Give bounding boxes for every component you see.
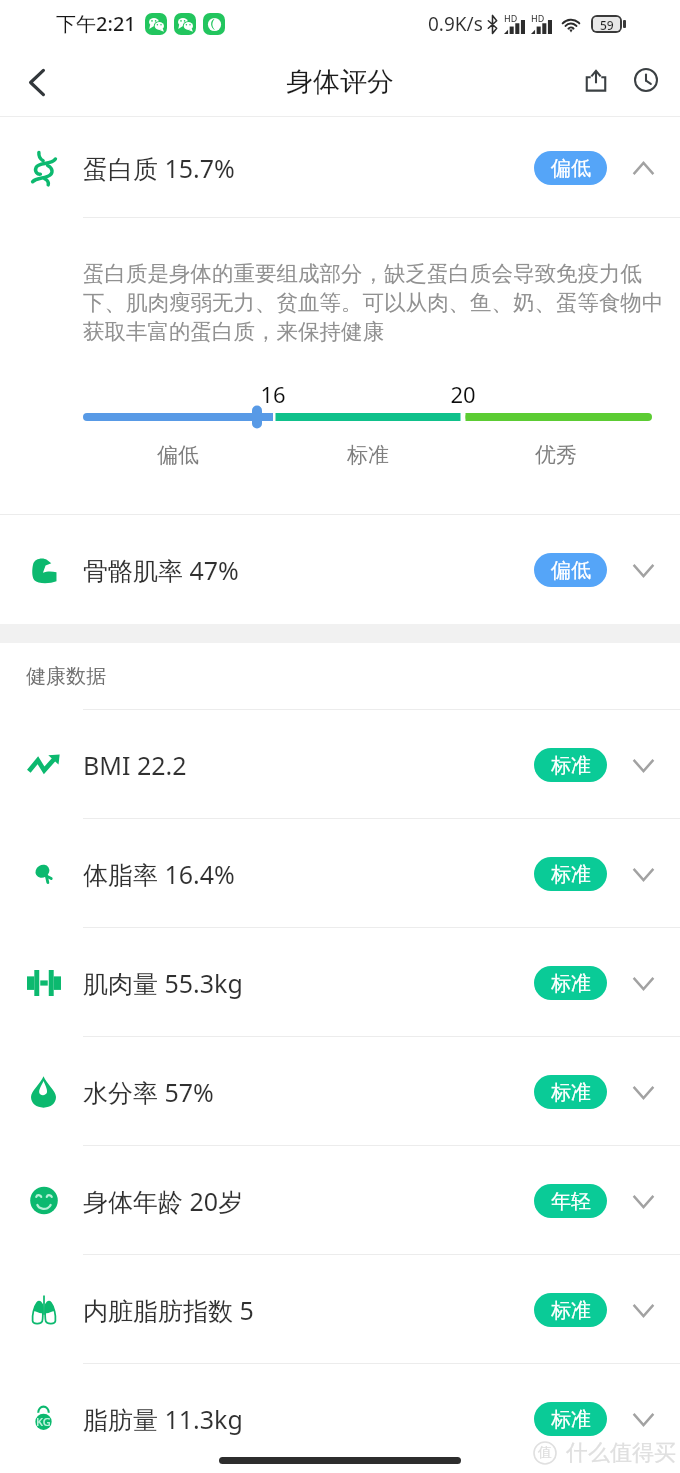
button[interactable]: Expand [623, 1399, 663, 1439]
staticText: 标准 [347, 442, 389, 468]
staticText: 蛋白质 15.7% [83, 151, 235, 185]
staticText: 水分率 57% [83, 1075, 214, 1109]
button[interactable]: Share [571, 55, 621, 105]
staticText: 值 [538, 1444, 552, 1462]
staticText: 蛋白质是身体的重要组成部分，缺乏蛋白质会导致免疫力低下、肌肉瘦弱无力、贫血等。可… [83, 259, 670, 346]
button[interactable]: Expand [623, 550, 663, 590]
button[interactable]: 蛋白质 15.7% [0, 117, 680, 218]
staticText: BMI 22.2 [83, 748, 187, 782]
staticText: 20 [450, 379, 476, 409]
button[interactable]: Expand [623, 854, 663, 894]
staticText: 标准 [551, 1080, 591, 1105]
button[interactable]: Expand [623, 1072, 663, 1112]
staticText: 内脏脂肪指数 5 [83, 1293, 254, 1327]
staticText: HD [531, 12, 545, 24]
button[interactable]: Expand [623, 1290, 663, 1330]
button[interactable]: 体脂率 16.4% [0, 819, 680, 928]
staticText: 下午2:21 [56, 10, 136, 37]
staticText: 年轻 [551, 1189, 591, 1214]
button[interactable]: 内脏脂肪指数 5 [0, 1255, 680, 1364]
button[interactable]: 肌肉量 55.3kg [0, 928, 680, 1037]
staticText: 标准 [551, 1407, 591, 1432]
button[interactable]: KG [0, 1364, 680, 1473]
staticText: 健康数据 [26, 664, 106, 689]
staticText: HD [504, 12, 518, 24]
button[interactable]: Expand [623, 1181, 663, 1221]
button[interactable]: History [621, 55, 671, 105]
staticText: 偏低 [157, 442, 199, 468]
staticText: 标准 [551, 971, 591, 996]
button[interactable]: Back [8, 53, 66, 111]
staticText: 标准 [551, 1298, 591, 1323]
button[interactable]: Expand [623, 963, 663, 1003]
button[interactable]: Collapse [623, 148, 663, 188]
staticText: KG [36, 1414, 51, 1429]
staticText: 身体评分 [286, 65, 394, 99]
button[interactable]: 骨骼肌率 47% [0, 515, 680, 624]
staticText: 标准 [551, 753, 591, 778]
button[interactable]: BMI 22.2 [0, 710, 680, 819]
staticText: 标准 [551, 862, 591, 887]
staticText: 什么值得买 [566, 1439, 676, 1467]
staticText: 59 [600, 17, 614, 31]
staticText: 体脂率 16.4% [83, 857, 235, 891]
staticText: 偏低 [551, 558, 591, 583]
staticText: 脂肪量 11.3kg [83, 1402, 243, 1436]
staticText: 身体年龄 20岁 [83, 1184, 244, 1218]
staticText: 骨骼肌率 47% [83, 553, 239, 587]
staticText: 偏低 [551, 156, 591, 181]
button[interactable]: 身体年龄 20岁 [0, 1146, 680, 1255]
button[interactable]: 水分率 57% [0, 1037, 680, 1146]
staticText: 0.9K/s [428, 11, 483, 37]
staticText: 16 [260, 379, 286, 409]
button[interactable]: Expand [623, 745, 663, 785]
staticText: 肌肉量 55.3kg [83, 966, 243, 1000]
staticText: 优秀 [535, 442, 577, 468]
